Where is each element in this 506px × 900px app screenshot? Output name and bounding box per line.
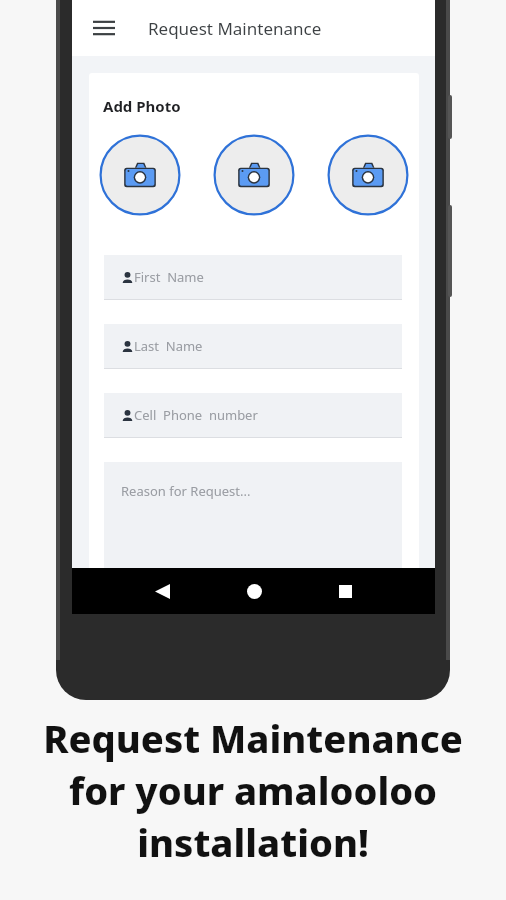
staticText: Last Name — [134, 337, 203, 355]
staticText: Request Maintenance — [148, 17, 322, 40]
button[interactable]: Cell Phone number — [104, 393, 402, 438]
button[interactable]: Reason for Request... — [104, 462, 402, 612]
button[interactable]: Back — [134, 568, 190, 614]
staticText: Add Photo — [103, 96, 181, 116]
button[interactable]: First Name — [104, 255, 402, 300]
staticText: Reason for Request... — [121, 482, 251, 500]
button[interactable]: Recent apps — [317, 568, 373, 614]
staticText: Cell Phone number — [134, 406, 258, 424]
button[interactable]: Add photo — [213, 134, 295, 216]
staticText: First Name — [134, 268, 204, 286]
button[interactable]: Home — [226, 568, 282, 614]
button[interactable]: Add photo — [327, 134, 409, 216]
button[interactable]: Open navigation menu — [80, 4, 128, 52]
staticText: Request Maintenance for your amalooloo i… — [43, 712, 463, 868]
button[interactable]: Last Name — [104, 324, 402, 369]
button[interactable]: Add photo — [99, 134, 181, 216]
